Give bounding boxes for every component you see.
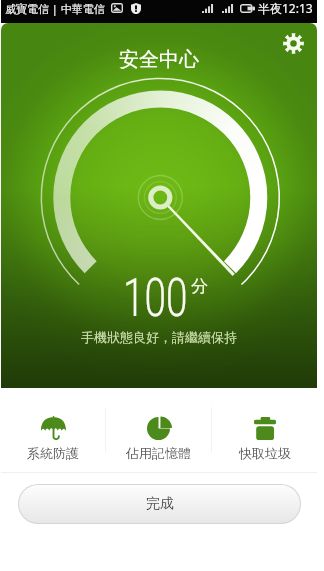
staticText: 威寶電信 | 中華電信 [5, 1, 105, 16]
staticText: 安全中心 [119, 47, 199, 72]
staticText: 半夜12:13 [258, 0, 313, 16]
staticText: 手機狀態良好，請繼續保持 [81, 329, 237, 345]
button[interactable]: Settings [279, 29, 307, 57]
button[interactable]: 系統防護 [1, 388, 105, 472]
staticText: 佔用記憶體 [126, 445, 191, 461]
button[interactable]: 佔用記憶體 [106, 388, 211, 472]
staticText: 完成 [146, 495, 174, 513]
staticText: 系統防護 [27, 445, 79, 461]
button[interactable]: 完成 [19, 485, 300, 523]
staticText: 分 [191, 276, 208, 297]
staticText: 快取垃圾 [239, 445, 291, 461]
staticText: 100 [123, 267, 188, 329]
button[interactable]: 快取垃圾 [212, 388, 317, 472]
